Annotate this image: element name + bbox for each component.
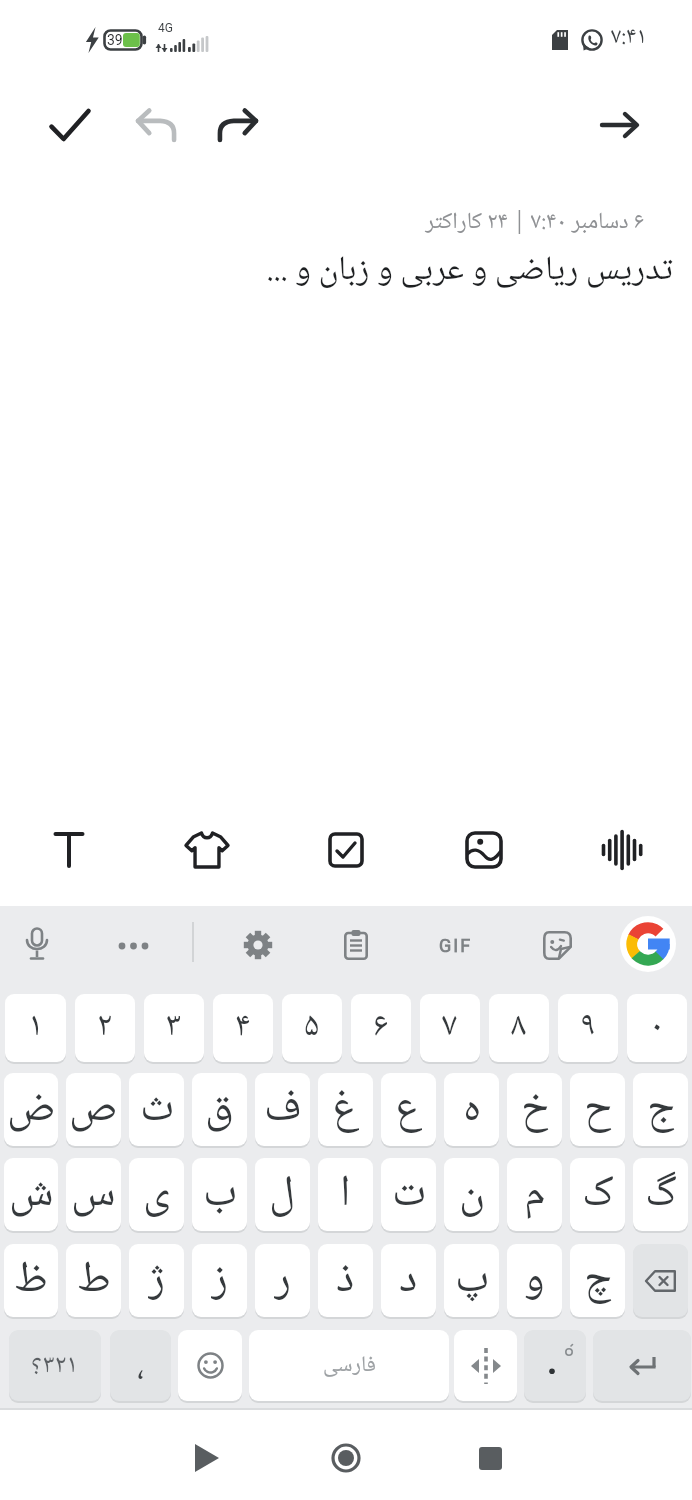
button[interactable]: ، xyxy=(110,1330,171,1401)
button[interactable] xyxy=(524,1330,586,1401)
button[interactable]: ا xyxy=(318,1158,373,1231)
button[interactable] xyxy=(40,99,100,151)
button[interactable]: ی xyxy=(129,1158,184,1231)
staticText: پ xyxy=(455,1244,489,1317)
button[interactable]: ق xyxy=(192,1073,247,1146)
button[interactable]: ۰ xyxy=(627,994,687,1062)
staticText: ل xyxy=(269,1158,296,1231)
button[interactable] xyxy=(231,918,285,972)
button[interactable] xyxy=(593,1330,691,1401)
button[interactable]: ج xyxy=(633,1073,688,1146)
staticText: ص xyxy=(69,1073,118,1146)
button[interactable]: ە xyxy=(444,1073,499,1146)
button[interactable]: ۸ xyxy=(489,994,549,1062)
button[interactable]: ب xyxy=(192,1158,247,1231)
staticText: ۰ xyxy=(649,999,665,1057)
button[interactable] xyxy=(530,918,584,972)
button[interactable]: ۴ xyxy=(213,994,273,1062)
button[interactable] xyxy=(178,821,236,879)
button[interactable]: ح xyxy=(570,1073,625,1146)
button[interactable] xyxy=(318,1430,374,1486)
button[interactable]: ۱ xyxy=(5,994,66,1062)
button[interactable] xyxy=(455,821,513,879)
staticText: ە xyxy=(463,1073,481,1146)
button[interactable]: ز xyxy=(192,1244,247,1317)
button[interactable]: ع xyxy=(381,1073,436,1146)
button[interactable]: س xyxy=(66,1158,121,1231)
staticText: ح xyxy=(584,1073,612,1146)
button[interactable]: ۶ xyxy=(351,994,411,1062)
button[interactable] xyxy=(208,99,268,151)
staticText: ز xyxy=(211,1244,228,1317)
button[interactable] xyxy=(317,821,375,879)
button[interactable] xyxy=(40,821,98,879)
button[interactable] xyxy=(620,916,676,972)
button[interactable]: ض xyxy=(4,1073,58,1146)
button[interactable]: غ xyxy=(318,1073,373,1146)
button[interactable]: ۵ xyxy=(282,994,342,1062)
button[interactable]: ف xyxy=(255,1073,310,1146)
staticText: ۳ xyxy=(166,999,182,1057)
button[interactable] xyxy=(126,99,186,151)
staticText: ظ xyxy=(14,1244,48,1317)
button[interactable] xyxy=(462,1430,518,1486)
staticText: ۷:۴۱ xyxy=(611,18,647,57)
button[interactable]: ش xyxy=(4,1158,58,1231)
button[interactable]: پ xyxy=(444,1244,499,1317)
staticText: ث xyxy=(140,1073,174,1146)
button[interactable]: ۷ xyxy=(420,994,480,1062)
staticText: ۲ xyxy=(97,999,113,1057)
staticText: س xyxy=(71,1158,116,1231)
staticText: ۳۲۱ xyxy=(43,1344,79,1388)
button[interactable] xyxy=(593,821,651,879)
button[interactable]: ؟ xyxy=(9,1330,101,1401)
staticText: ۴ xyxy=(235,999,251,1057)
button[interactable]: م xyxy=(507,1158,562,1231)
button[interactable]: ک xyxy=(570,1158,625,1231)
staticText: غ xyxy=(332,1073,359,1146)
button[interactable]: ظ xyxy=(4,1244,58,1317)
button[interactable]: ذ xyxy=(318,1244,373,1317)
button[interactable]: و xyxy=(507,1244,562,1317)
button[interactable]: ژ xyxy=(129,1244,184,1317)
staticText: م xyxy=(524,1158,546,1231)
button[interactable] xyxy=(590,99,650,151)
staticText: ک xyxy=(582,1158,614,1231)
button[interactable]: ر xyxy=(255,1244,310,1317)
button[interactable]: گ xyxy=(633,1158,688,1231)
staticText: ت xyxy=(392,1158,426,1231)
button[interactable]: چ xyxy=(570,1244,625,1317)
button[interactable]: ل xyxy=(255,1158,310,1231)
button[interactable] xyxy=(10,918,64,972)
button[interactable]: GIF xyxy=(428,918,484,972)
staticText: ۷ xyxy=(442,999,458,1057)
staticText: ن xyxy=(459,1158,485,1231)
button[interactable]: ۲ xyxy=(75,994,135,1062)
staticText: ۶ دسامبر ۷:۴۰ | ۲۴ کاراکتر xyxy=(425,203,644,242)
button[interactable] xyxy=(178,1430,234,1486)
staticText: ، xyxy=(137,1341,145,1399)
staticText: ق xyxy=(205,1073,234,1146)
staticText: تدریس ریاضی و عربی و زبان و ... xyxy=(266,243,673,301)
button[interactable] xyxy=(633,1244,688,1317)
button[interactable]: ۹ xyxy=(558,994,618,1062)
button[interactable] xyxy=(454,1330,517,1401)
button[interactable]: خ xyxy=(507,1073,562,1146)
button[interactable]: د xyxy=(381,1244,436,1317)
staticText: ۵ xyxy=(304,999,320,1057)
staticText: ۹ xyxy=(580,999,596,1057)
staticText: ط xyxy=(77,1244,111,1317)
button[interactable]: ط xyxy=(66,1244,121,1317)
staticText: ض xyxy=(7,1073,56,1146)
button[interactable]: ص xyxy=(66,1073,121,1146)
button[interactable]: ۳ xyxy=(144,994,204,1062)
button[interactable]: فارسی xyxy=(249,1330,449,1401)
button[interactable]: ن xyxy=(444,1158,499,1231)
button[interactable]: ث xyxy=(129,1073,184,1146)
button[interactable] xyxy=(178,1330,242,1401)
button[interactable]: ت xyxy=(381,1158,436,1231)
staticText: ا xyxy=(340,1158,351,1231)
staticText: 4G xyxy=(158,21,173,35)
button[interactable] xyxy=(329,918,383,972)
staticText: ف xyxy=(264,1073,302,1146)
